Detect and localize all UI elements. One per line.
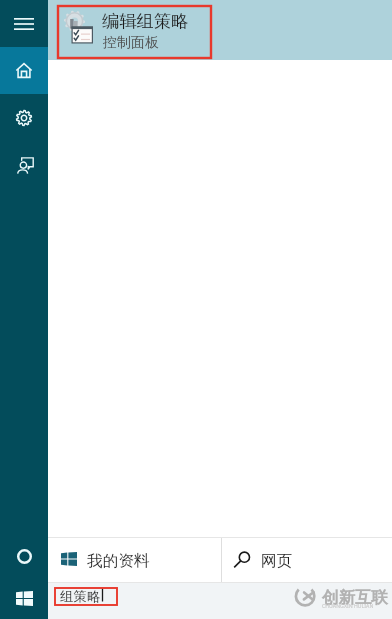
button[interactable]: Menu bbox=[0, 0, 48, 47]
button[interactable]: Cortana bbox=[0, 535, 48, 578]
staticText: CHUANGXIN HULIAN bbox=[322, 602, 374, 609]
staticText: 网页 bbox=[261, 551, 293, 571]
staticText: 我的资料 bbox=[87, 551, 150, 571]
staticText: 编辑组策略 bbox=[102, 10, 189, 32]
button[interactable]: Home bbox=[0, 47, 48, 94]
staticText: 创新互联 bbox=[322, 587, 388, 608]
button[interactable]: 我的资料 bbox=[48, 538, 221, 582]
button[interactable]: Start bbox=[0, 578, 48, 619]
button[interactable]: 组策略 bbox=[60, 588, 101, 605]
button[interactable]: 网页 bbox=[222, 538, 392, 582]
button[interactable]: Settings bbox=[0, 94, 48, 141]
staticText: 组策略 bbox=[60, 588, 101, 605]
button[interactable]: 编辑组策略 bbox=[0, 0, 392, 60]
staticText: 控制面板 bbox=[103, 34, 159, 52]
button[interactable]: Feedback bbox=[0, 141, 48, 188]
